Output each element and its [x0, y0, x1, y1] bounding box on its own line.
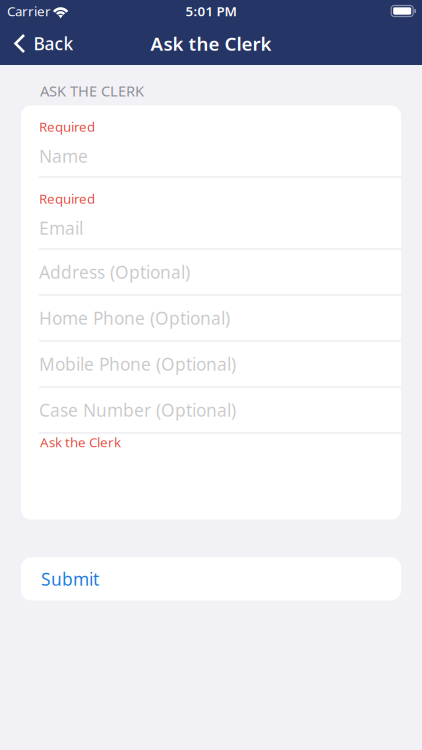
button[interactable]: Back [0, 22, 85, 64]
button[interactable]: Required [21, 177, 401, 248]
staticText: Required [39, 190, 95, 207]
staticText: Back [33, 32, 73, 55]
staticText: 5:01 PM [185, 2, 236, 20]
staticText: Address (Optional) [39, 260, 190, 283]
staticText: Mobile Phone (Optional) [39, 352, 236, 375]
button[interactable]: Case Number (Optional) [21, 387, 401, 432]
staticText: Submit [41, 567, 99, 590]
button[interactable]: Home Phone (Optional) [21, 295, 401, 340]
button[interactable]: Ask the Clerk [21, 433, 401, 450]
staticText: Required [39, 118, 95, 135]
button[interactable]: Mobile Phone (Optional) [21, 341, 401, 386]
staticText: Email [39, 216, 83, 239]
staticText: Ask the Clerk [40, 433, 121, 451]
staticText: Case Number (Optional) [39, 398, 236, 421]
staticText: ASK THE CLERK [40, 81, 144, 100]
button[interactable]: Address (Optional) [21, 249, 401, 294]
staticText: Carrier [7, 2, 51, 20]
button[interactable]: Required [21, 105, 401, 176]
button[interactable]: Submit [0, 557, 422, 600]
staticText: Ask the Clerk [150, 31, 271, 56]
staticText: Name [39, 144, 88, 167]
staticText: Home Phone (Optional) [39, 306, 230, 329]
